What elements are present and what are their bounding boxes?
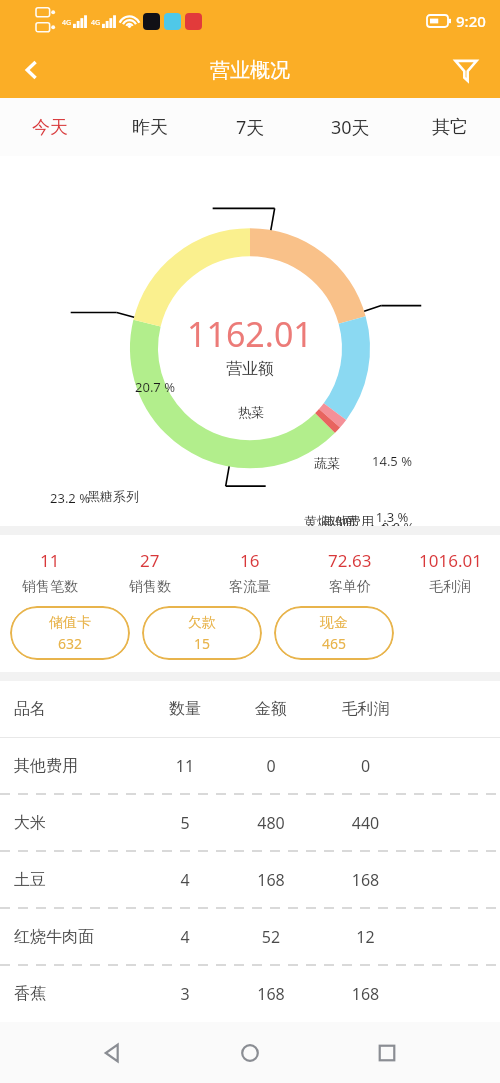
button[interactable]: 现金 bbox=[274, 606, 394, 660]
staticText: 大米 bbox=[14, 813, 142, 833]
button[interactable]: Recents bbox=[363, 1029, 411, 1077]
staticText: 金额 bbox=[228, 699, 314, 719]
staticText: 欠款 bbox=[188, 614, 216, 632]
staticText: 1.0 % bbox=[357, 520, 413, 538]
staticText: 黑糖系列 bbox=[83, 488, 143, 504]
button[interactable]: 7天 bbox=[200, 98, 300, 156]
staticText: 4 bbox=[142, 926, 228, 948]
staticText: 营业额 bbox=[226, 359, 274, 379]
button[interactable]: 其他费用 bbox=[0, 738, 500, 794]
staticText: 今天 bbox=[32, 116, 68, 139]
staticText: 其他费用 bbox=[318, 513, 378, 529]
staticText: 客流量 bbox=[229, 578, 271, 596]
staticText: 480 bbox=[228, 812, 314, 834]
staticText: 168 bbox=[228, 983, 314, 1005]
button[interactable]: 大米 bbox=[0, 795, 500, 851]
button[interactable]: 其它 bbox=[400, 98, 500, 156]
staticText: 热菜 bbox=[221, 404, 281, 420]
staticText: 其他费用 bbox=[14, 756, 142, 776]
button[interactable]: Filter bbox=[442, 46, 490, 94]
staticText: 其它 bbox=[432, 116, 468, 139]
button[interactable]: 72.63 bbox=[300, 549, 400, 596]
staticText: 品名 bbox=[14, 699, 142, 719]
button[interactable]: 27 bbox=[100, 549, 200, 596]
staticText: 4G bbox=[91, 18, 101, 28]
staticText: 储值卡 bbox=[49, 614, 91, 632]
staticText: 0.0 % bbox=[370, 518, 426, 536]
button[interactable]: Back bbox=[8, 46, 56, 94]
staticText: 昨天 bbox=[132, 116, 168, 139]
staticText: 632 bbox=[58, 634, 83, 653]
staticText: 7天 bbox=[236, 115, 265, 140]
button[interactable]: 1016.01 bbox=[400, 549, 500, 596]
button[interactable]: 16 bbox=[200, 549, 300, 596]
staticText: 72.63 bbox=[328, 549, 372, 572]
staticText: 黄焖鸡面 bbox=[300, 513, 360, 529]
staticText: 465 bbox=[322, 634, 347, 653]
staticText: 4G bbox=[62, 18, 72, 28]
button[interactable]: 今天 bbox=[0, 98, 100, 156]
staticText: 1162.01 bbox=[187, 311, 313, 357]
staticText: 数量 bbox=[142, 699, 228, 719]
staticText: 14.5 % bbox=[364, 452, 420, 470]
button[interactable]: 昨天 bbox=[100, 98, 200, 156]
staticText: 27 bbox=[140, 549, 160, 572]
staticText: 红烧牛肉面 bbox=[14, 927, 142, 947]
button[interactable]: Back bbox=[89, 1029, 137, 1077]
staticText: 炒菜 bbox=[315, 523, 375, 539]
staticText: 168 bbox=[314, 869, 417, 891]
staticText: 毛利润 bbox=[314, 699, 417, 719]
button[interactable]: 30天 bbox=[300, 98, 400, 156]
staticText: 52 bbox=[228, 926, 314, 948]
button[interactable]: 储值卡 bbox=[10, 606, 130, 660]
staticText: 30天 bbox=[331, 115, 370, 140]
staticText: 11 bbox=[40, 549, 60, 572]
staticText: 23.2 % bbox=[42, 489, 98, 507]
button[interactable]: 11 bbox=[0, 549, 100, 596]
button[interactable]: 红烧牛肉面 bbox=[0, 909, 500, 965]
staticText: 16 bbox=[240, 549, 260, 572]
staticText: 1016.01 bbox=[419, 549, 482, 572]
staticText: 营业概况 bbox=[210, 58, 290, 83]
staticText: 毛利润 bbox=[429, 578, 471, 596]
staticText: 41.3 % bbox=[302, 631, 358, 649]
button[interactable]: 欠款 bbox=[142, 606, 262, 660]
staticText: 土豆 bbox=[14, 870, 142, 890]
staticText: 3 bbox=[142, 983, 228, 1005]
staticText: 客单价 bbox=[329, 578, 371, 596]
staticText: 5 bbox=[142, 812, 228, 834]
staticText: 香蕉 bbox=[14, 984, 142, 1004]
button[interactable]: 土豆 bbox=[0, 852, 500, 908]
staticText: 168 bbox=[228, 869, 314, 891]
staticText: 15 bbox=[194, 634, 211, 653]
staticText: 0 bbox=[228, 755, 314, 777]
staticText: 0 bbox=[314, 755, 417, 777]
staticText: 1.3 % bbox=[364, 508, 420, 526]
staticText: 11 bbox=[142, 755, 228, 777]
staticText: 销售笔数 bbox=[22, 578, 78, 596]
staticText: 168 bbox=[314, 983, 417, 1005]
button[interactable]: Home bbox=[226, 1029, 274, 1077]
staticText: 现金 bbox=[320, 614, 348, 632]
staticText: 12 bbox=[314, 926, 417, 948]
staticText: 销售数 bbox=[129, 578, 171, 596]
staticText: 9:20 bbox=[456, 11, 486, 31]
staticText: 20.7 % bbox=[127, 378, 183, 396]
staticText: 蔬菜 bbox=[297, 455, 357, 471]
staticText: 440 bbox=[314, 812, 417, 834]
button[interactable]: 香蕉 bbox=[0, 966, 500, 1022]
staticText: 主食 bbox=[233, 613, 293, 629]
staticText: 4 bbox=[142, 869, 228, 891]
